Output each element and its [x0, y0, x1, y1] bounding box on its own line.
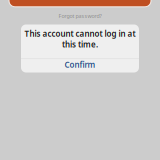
button[interactable]: Log in — [9, 0, 151, 7]
staticText: This account cannot log in at — [24, 28, 135, 39]
staticText: Confirm — [64, 59, 95, 70]
staticText: Forgot password? — [58, 12, 101, 20]
staticText: this time. — [62, 39, 98, 50]
button[interactable]: Forgot password? — [50, 11, 110, 21]
button[interactable]: Confirm — [21, 59, 139, 72]
